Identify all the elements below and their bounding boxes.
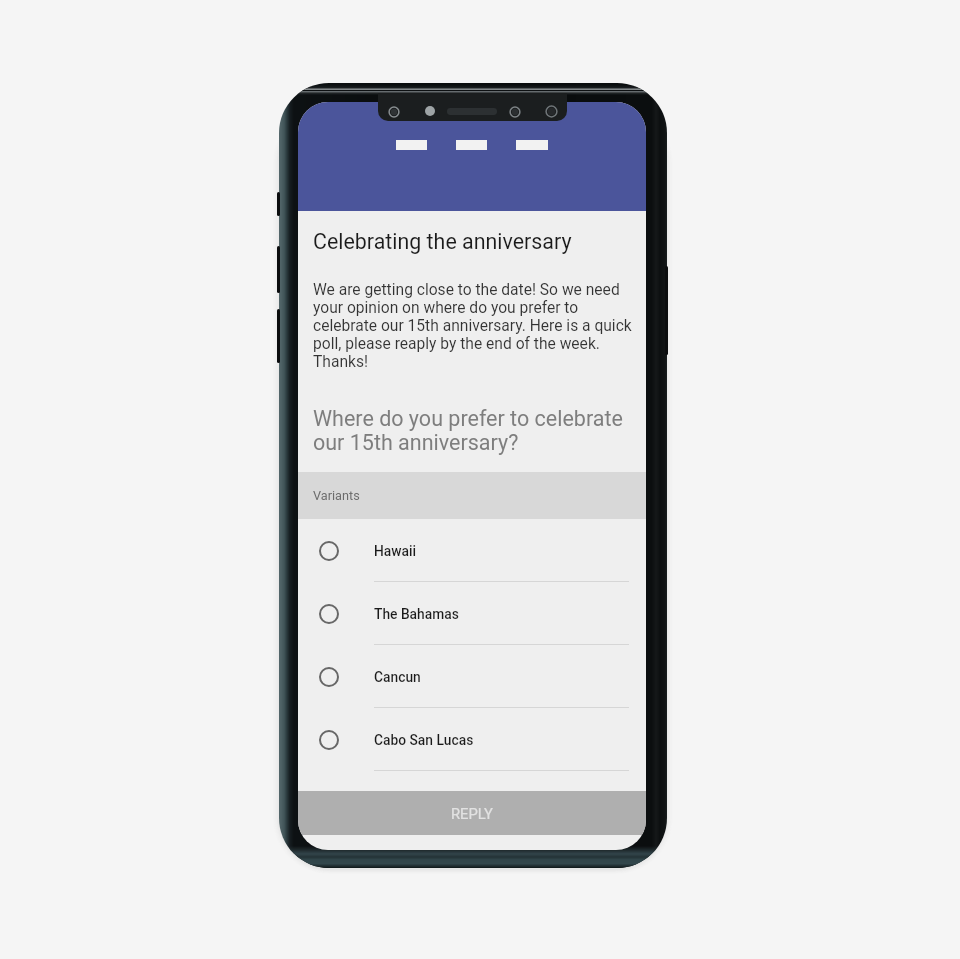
staticText: Cabo San Lucas [374,732,474,748]
staticText: Celebrating the anniversary [313,229,572,254]
staticText: The Bahamas [374,606,459,622]
button[interactable]: REPLY [298,791,646,835]
button[interactable]: Select Cabo San Lucas [298,708,646,771]
staticText: Hawaii [374,543,417,559]
staticText: Cancun [374,669,421,685]
button[interactable]: Select Hawaii [298,519,646,582]
staticText: REPLY [451,805,493,822]
staticText: Where do you prefer to celebrate our 15t… [313,406,632,456]
button[interactable]: Select The Bahamas [298,582,646,645]
staticText: We are getting close to the date! So we … [313,281,639,371]
button[interactable]: Select Cancun [298,645,646,708]
staticText: Variants [313,488,360,503]
